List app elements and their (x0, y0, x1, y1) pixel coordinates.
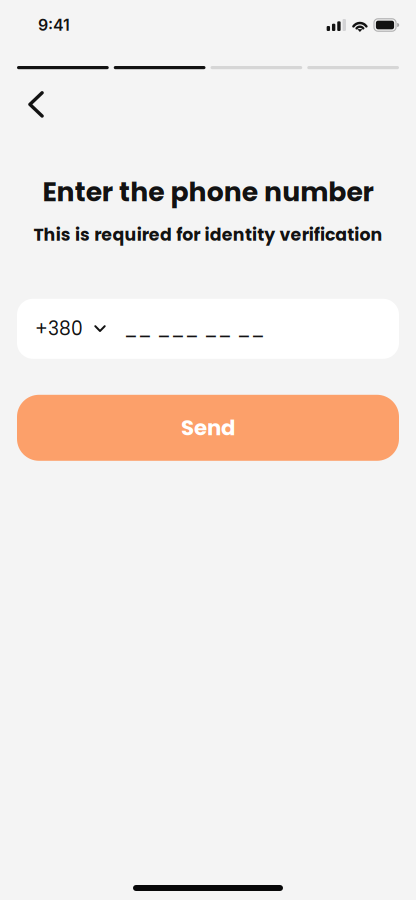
staticText: This is required for identity verificati… (33, 222, 383, 247)
button[interactable]: Back (14, 82, 58, 126)
staticText: 9:41 (38, 15, 70, 35)
button[interactable]: +380 (17, 299, 122, 359)
staticText: +380 (35, 316, 83, 342)
staticText: Send (181, 413, 235, 443)
staticText: __ ___ __ __ (124, 316, 265, 342)
button[interactable]: Send (17, 395, 399, 461)
staticText: Enter the phone number (42, 173, 374, 210)
